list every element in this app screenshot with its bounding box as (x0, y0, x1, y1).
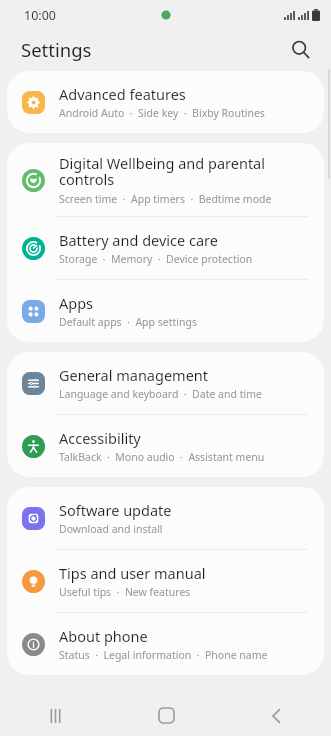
staticText: Android Auto · Side key · Bixby Routines (59, 106, 265, 120)
button[interactable]: Recents (0, 695, 111, 736)
button[interactable]: Search (281, 30, 319, 68)
staticText: Settings (21, 37, 92, 62)
staticText: Tips and user manual (59, 563, 206, 583)
button[interactable]: Tips and user manual (7, 550, 324, 612)
staticText: Default apps · App settings (59, 315, 197, 329)
staticText: Digital Wellbeing and parental controls (59, 153, 265, 190)
staticText: Accessibility (59, 428, 141, 448)
staticText: Status · Legal information · Phone name (59, 648, 268, 662)
staticText: 10:00 (24, 7, 56, 24)
staticText: Language and keyboard · Date and time (59, 387, 262, 401)
staticText: Useful tips · New features (59, 585, 191, 599)
button[interactable]: Home (111, 695, 221, 736)
staticText: Screen time · App timers · Bedtime mode (59, 192, 272, 206)
button[interactable]: Apps (7, 280, 324, 342)
staticText: Download and install (59, 522, 163, 536)
staticText: Apps (59, 293, 94, 313)
button[interactable]: Accessibility (7, 415, 324, 477)
button[interactable]: Software update (7, 487, 324, 549)
button[interactable]: About phone (7, 613, 324, 675)
button[interactable]: Back (221, 695, 331, 736)
staticText: TalkBack · Mono audio · Assistant menu (59, 450, 265, 464)
staticText: General management (59, 365, 209, 385)
staticText: Battery and device care (59, 230, 218, 250)
button[interactable]: Advanced features (7, 71, 324, 133)
button[interactable]: Digital Wellbeing and parental controls (7, 143, 324, 216)
button[interactable]: Battery and device care (7, 217, 324, 279)
staticText: Advanced features (59, 84, 186, 104)
staticText: Software update (59, 500, 172, 520)
button[interactable]: General management (7, 352, 324, 414)
staticText: About phone (59, 626, 148, 646)
staticText: Storage · Memory · Device protection (59, 252, 253, 266)
